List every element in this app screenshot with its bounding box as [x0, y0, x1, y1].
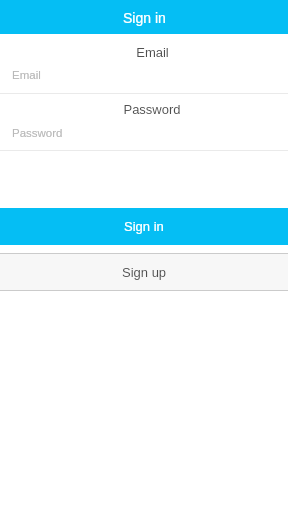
button[interactable]: Email [0, 34, 288, 94]
staticText: Email [136, 45, 169, 60]
button[interactable]: Password [0, 94, 288, 151]
button[interactable]: Sign in [0, 208, 288, 245]
staticText: Sign in [124, 219, 164, 234]
staticText: Sign in [123, 10, 166, 26]
staticText: Email [12, 69, 41, 82]
staticText: Password [12, 127, 63, 140]
staticText: Sign up [122, 265, 167, 280]
button[interactable]: Sign up [0, 254, 288, 290]
staticText: Password [123, 102, 181, 117]
